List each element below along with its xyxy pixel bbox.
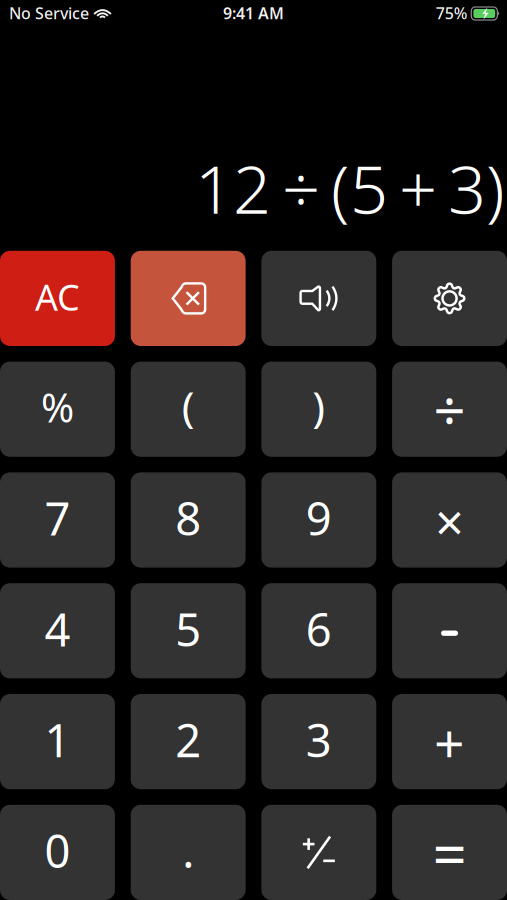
button[interactable]: Delete bbox=[131, 251, 246, 346]
staticText: 2 bbox=[175, 709, 201, 770]
staticText: 12 ÷ (5 + 3) bbox=[195, 143, 505, 232]
staticText: % bbox=[41, 380, 74, 433]
staticText: ÷ bbox=[434, 372, 466, 447]
button[interactable]: 3 bbox=[261, 694, 376, 789]
button[interactable]: 0 bbox=[0, 805, 115, 900]
button[interactable]: 4 bbox=[0, 583, 115, 678]
button[interactable]: Decimal point bbox=[131, 805, 246, 900]
staticText: 75% bbox=[436, 2, 468, 24]
button[interactable]: Divide bbox=[392, 362, 507, 457]
staticText: ( bbox=[182, 378, 195, 434]
button[interactable]: 2 bbox=[131, 694, 246, 789]
button[interactable]: Equals bbox=[392, 805, 507, 900]
button[interactable]: 6 bbox=[261, 583, 376, 678]
button[interactable]: 8 bbox=[131, 472, 246, 568]
staticText: 9 bbox=[306, 488, 332, 548]
staticText: 7 bbox=[44, 488, 70, 548]
staticText: 3 bbox=[306, 709, 332, 770]
button[interactable]: 5 bbox=[131, 583, 246, 678]
button[interactable]: Minus bbox=[392, 583, 507, 678]
button[interactable]: Plus minus bbox=[261, 805, 376, 900]
button[interactable]: 9 bbox=[261, 472, 376, 568]
staticText: AC bbox=[35, 273, 80, 321]
staticText: 9:41 AM bbox=[223, 2, 284, 24]
button[interactable]: 1 bbox=[0, 694, 115, 789]
staticText: 0 bbox=[44, 820, 70, 880]
button[interactable]: Settings bbox=[392, 251, 507, 346]
staticText: . bbox=[182, 820, 194, 880]
staticText: = bbox=[433, 813, 467, 893]
staticText: No Service bbox=[9, 2, 89, 24]
button[interactable]: Sound bbox=[261, 251, 376, 346]
button[interactable]: 7 bbox=[0, 472, 115, 568]
button[interactable]: % bbox=[0, 362, 115, 457]
staticText: ) bbox=[312, 378, 325, 434]
button[interactable]: Open parenthesis bbox=[131, 362, 246, 457]
staticText: 5 bbox=[175, 599, 201, 659]
staticText: 8 bbox=[175, 488, 201, 548]
staticText: + bbox=[434, 707, 465, 778]
button[interactable]: Plus bbox=[392, 694, 507, 789]
staticText: × bbox=[435, 488, 464, 555]
staticText: 1 bbox=[44, 709, 70, 770]
button[interactable]: AC bbox=[0, 251, 115, 346]
button[interactable]: Multiply bbox=[392, 472, 507, 568]
button[interactable]: Close parenthesis bbox=[261, 362, 376, 457]
staticText: 6 bbox=[306, 599, 332, 659]
staticText: 4 bbox=[44, 599, 70, 659]
